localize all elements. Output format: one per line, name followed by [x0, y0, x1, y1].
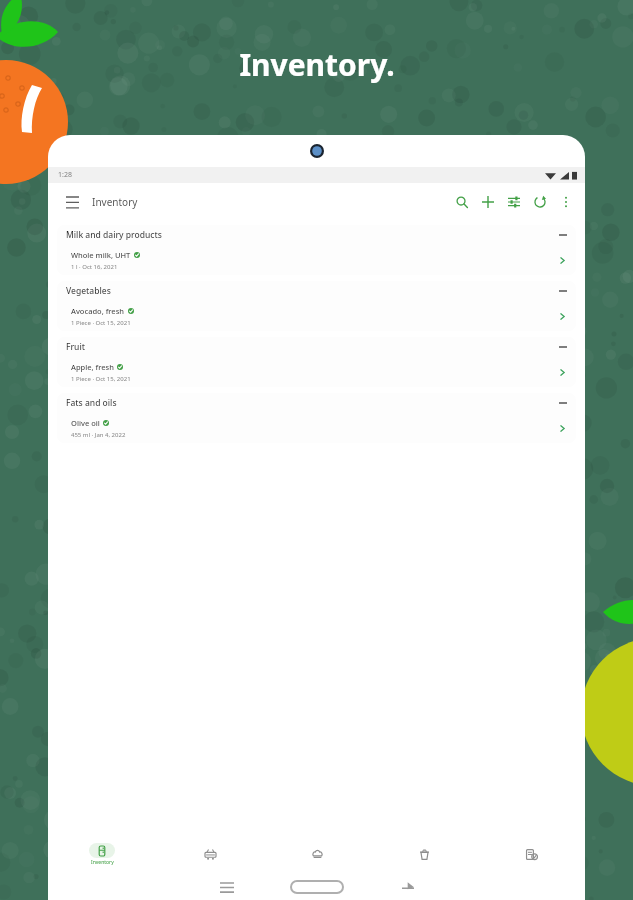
staticText: 455 ml · Jan 4, 2022: [71, 431, 126, 439]
button[interactable]: Recents: [182, 874, 272, 900]
staticText: Vegetables: [66, 285, 111, 297]
button[interactable]: Filter: [501, 189, 527, 215]
staticText: Inventory: [92, 195, 138, 209]
button[interactable]: Back: [362, 874, 452, 900]
button[interactable]: [371, 834, 478, 874]
staticText: Fats and oils: [66, 397, 117, 409]
button[interactable]: [156, 834, 264, 874]
button[interactable]: Refresh: [527, 189, 553, 215]
button[interactable]: Menu: [60, 190, 84, 214]
staticText: Olive oil: [71, 418, 100, 428]
staticText: 1 l · Oct 16, 2021: [71, 263, 118, 271]
staticText: 1 Piece · Oct 15, 2021: [71, 319, 131, 327]
staticText: 1:28: [58, 170, 72, 180]
button[interactable]: [264, 834, 371, 874]
button[interactable]: Milk and dairy products: [57, 225, 576, 275]
button[interactable]: Search: [449, 189, 475, 215]
button[interactable]: More options: [553, 189, 579, 215]
button[interactable]: Add: [475, 189, 501, 215]
staticText: Avocado, fresh: [71, 306, 125, 316]
staticText: Inventory.: [239, 44, 395, 85]
staticText: 1 Piece · Oct 15, 2021: [71, 375, 131, 383]
staticText: Inventory: [91, 859, 114, 866]
button[interactable]: Home: [272, 874, 362, 900]
staticText: Fruit: [66, 341, 85, 353]
button[interactable]: [478, 834, 585, 874]
button[interactable]: Vegetables: [57, 281, 576, 331]
staticText: Milk and dairy products: [66, 229, 162, 241]
staticText: Apple, fresh: [71, 362, 114, 372]
button[interactable]: Fats and oils: [57, 393, 576, 443]
staticText: Whole milk, UHT: [71, 250, 131, 260]
button[interactable]: Inventory: [48, 834, 156, 874]
button[interactable]: Fruit: [57, 337, 576, 387]
